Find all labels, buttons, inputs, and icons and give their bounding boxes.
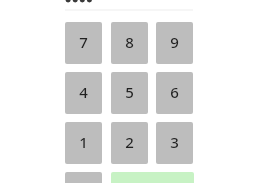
staticText: 2 [125, 132, 134, 152]
button[interactable]: 4 [65, 72, 102, 114]
button[interactable]: 7 [65, 22, 102, 64]
other: PIN entry, 4 digits entered [0, 0, 257, 6]
staticText: 5 [125, 82, 134, 102]
button[interactable]: 2 [111, 122, 148, 164]
button[interactable]: 8 [111, 22, 148, 64]
staticText: 7 [79, 32, 88, 52]
staticText: 1 [79, 132, 88, 152]
button[interactable]: 9 [156, 22, 193, 64]
button[interactable]: 5 [111, 72, 148, 114]
button[interactable]: 0 [65, 172, 102, 183]
button[interactable]: 1 [65, 122, 102, 164]
staticText: 4 [79, 82, 88, 102]
staticText: 8 [125, 32, 134, 52]
button[interactable]: 3 [156, 122, 193, 164]
staticText: 6 [170, 82, 179, 102]
button[interactable]: 6 [156, 72, 193, 114]
staticText: 9 [170, 32, 179, 52]
staticText: 3 [170, 132, 179, 152]
